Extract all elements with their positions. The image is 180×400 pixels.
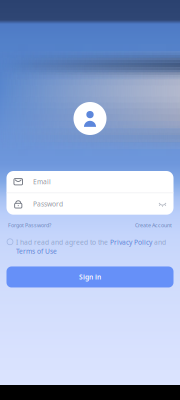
staticText: Forgot Password? [8,222,51,229]
button[interactable]: Sign in [6,266,173,287]
staticText: I had read and agreed to the Privacy Pol… [16,238,166,255]
staticText: Sign in [79,273,101,281]
button[interactable]: Agree to Privacy Policy and Terms of Use [7,238,13,245]
staticText: Create Account [135,222,172,229]
staticText: Email [33,177,51,186]
staticText: Password [33,199,63,208]
button[interactable]: Create Account [135,222,172,229]
button[interactable]: Forgot Password? [8,222,51,229]
